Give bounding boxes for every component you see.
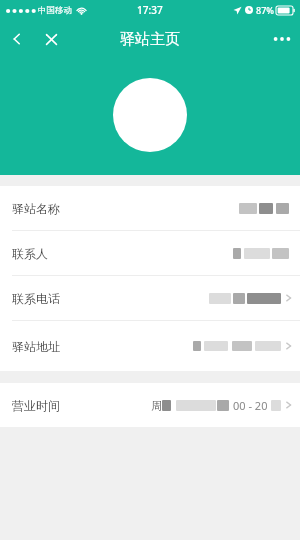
button[interactable]: Back — [4, 26, 30, 52]
staticText: 00 - 20 — [233, 398, 268, 413]
staticText: 驿站地址 — [12, 339, 60, 354]
button[interactable]: 驿站名称 — [0, 186, 300, 230]
staticText: 营业时间 — [12, 398, 60, 413]
staticText: 联系人 — [12, 246, 48, 261]
button[interactable]: Close — [38, 26, 64, 52]
staticText: 联系电话 — [12, 291, 60, 306]
button[interactable]: 联系人 — [0, 231, 300, 275]
button[interactable]: 营业时间 — [0, 383, 300, 427]
staticText: 17:37 — [137, 3, 163, 17]
button[interactable]: 联系电话 — [0, 276, 300, 320]
staticText: 周 — [151, 399, 162, 413]
button[interactable]: More options — [268, 25, 296, 53]
button[interactable]: Station avatar — [113, 78, 187, 152]
staticText: 驿站主页 — [120, 30, 180, 49]
staticText: 87% — [256, 4, 274, 16]
button[interactable]: 驿站地址 — [0, 321, 300, 371]
staticText: 驿站名称 — [12, 201, 60, 216]
staticText: 中国移动 — [38, 5, 72, 16]
